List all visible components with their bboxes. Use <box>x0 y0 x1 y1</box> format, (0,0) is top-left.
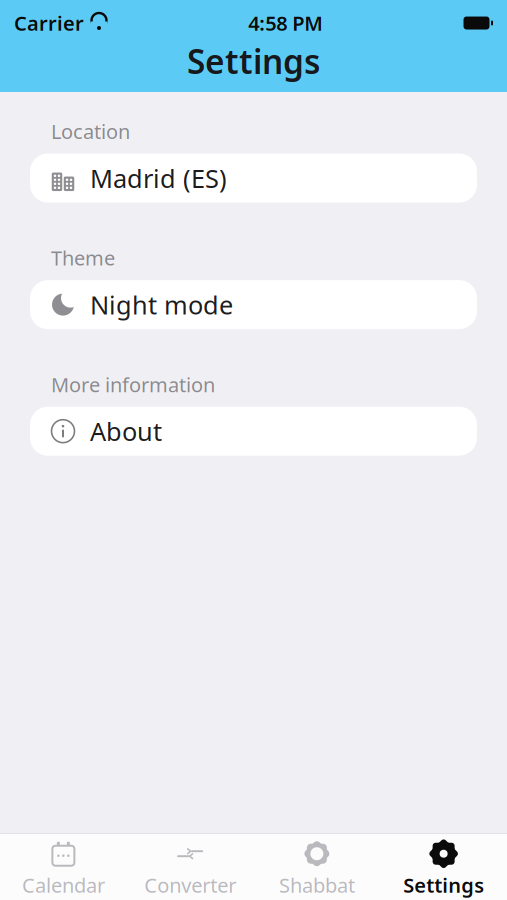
button[interactable]: Night mode <box>30 280 477 329</box>
staticText: Theme <box>51 245 115 271</box>
button[interactable]: About <box>30 407 477 456</box>
button[interactable]: Calendar <box>0 841 127 900</box>
staticText: Carrier <box>14 10 84 36</box>
staticText: Madrid (ES) <box>90 161 227 195</box>
button[interactable]: Madrid (ES) <box>30 154 477 203</box>
staticText: About <box>90 414 162 448</box>
staticText: 4:58 PM <box>248 10 323 36</box>
staticText: Converter <box>144 872 236 898</box>
staticText: Settings <box>187 39 320 83</box>
staticText: Shabbat <box>279 872 355 898</box>
staticText: Location <box>51 118 130 145</box>
button[interactable]: Converter <box>127 841 254 900</box>
button[interactable]: Settings <box>380 841 507 900</box>
staticText: Settings <box>403 872 484 898</box>
staticText: Calendar <box>22 872 105 898</box>
staticText: Night mode <box>90 288 233 321</box>
button[interactable]: Shabbat <box>253 841 380 900</box>
staticText: More information <box>51 371 215 398</box>
